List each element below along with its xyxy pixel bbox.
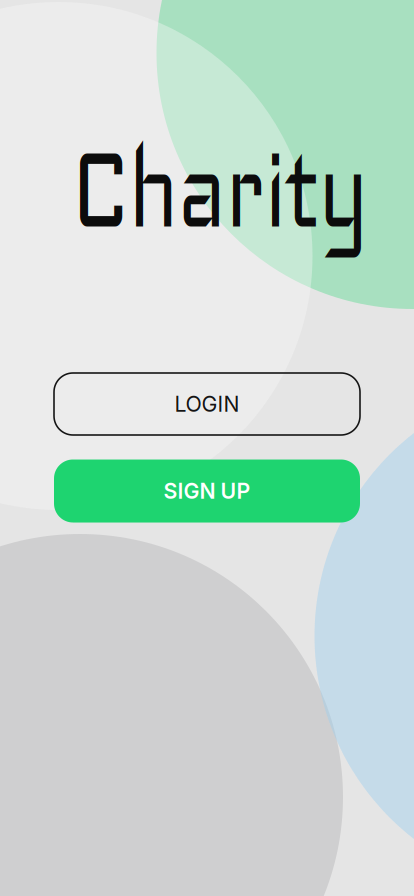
staticText: Charity — [0, 115, 414, 259]
button[interactable]: LOGIN — [54, 373, 360, 435]
staticText: SIGN UP — [163, 478, 250, 504]
staticText: LOGIN — [174, 391, 239, 417]
button[interactable]: SIGN UP — [54, 459, 360, 522]
